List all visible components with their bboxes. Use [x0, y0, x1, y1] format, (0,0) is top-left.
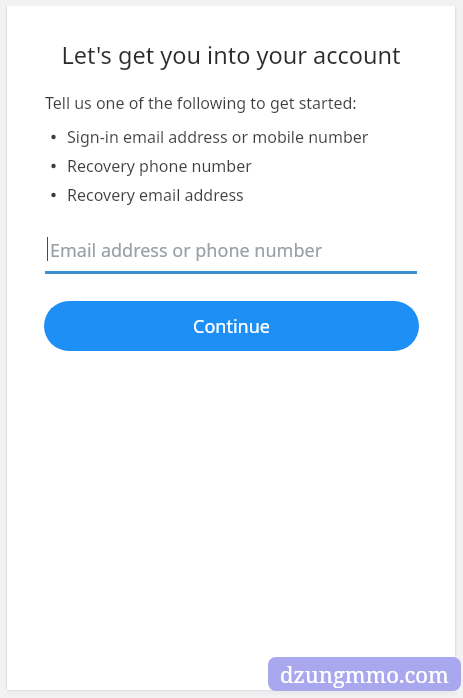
staticText: Recovery email address [67, 184, 244, 206]
staticText: Recovery phone number [67, 155, 252, 177]
staticText: Email address or phone number [50, 238, 323, 263]
staticText: Sign-in email address or mobile number [67, 126, 369, 148]
staticText: dzungmmo.com [280, 659, 449, 689]
staticText: Tell us one of the following to get star… [45, 92, 357, 114]
button[interactable]: Email address or phone number [45, 234, 417, 274]
other: dzungmmo.com watermark [268, 657, 461, 691]
button[interactable]: Continue [44, 301, 419, 351]
staticText: Continue [193, 314, 270, 339]
staticText: Let's get you into your account [23, 39, 439, 71]
